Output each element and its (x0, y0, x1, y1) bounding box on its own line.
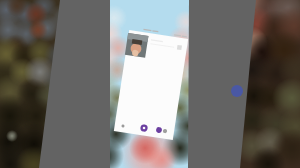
button[interactable]: Play video (0, 0, 300, 168)
